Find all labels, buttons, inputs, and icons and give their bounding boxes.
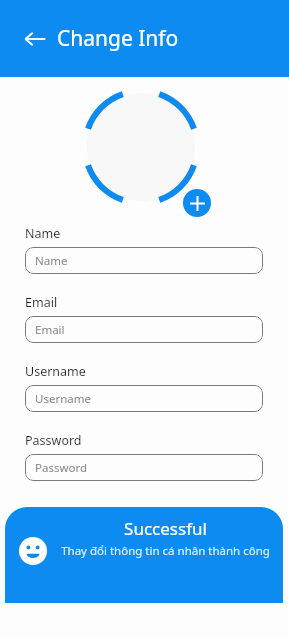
staticText: Username [25,363,86,380]
button[interactable]: Password [25,454,263,481]
button[interactable]: Email [25,316,263,343]
staticText: Name [25,225,61,242]
staticText: Password [25,432,82,449]
button[interactable]: Successful [5,507,283,603]
staticText: Name [35,253,68,269]
staticText: Username [35,391,91,407]
button[interactable]: Add photo [183,189,211,217]
staticText: Successful [124,517,207,540]
button[interactable]: Profile photo [87,93,195,201]
staticText: Thay đổi thông tin cá nhân thành công [61,543,270,559]
button[interactable]: Name [25,247,263,274]
staticText: Change Info [57,24,179,53]
button[interactable]: Username [25,385,263,412]
staticText: Email [35,322,65,338]
button[interactable]: Back [22,26,48,52]
staticText: Email [25,294,58,311]
staticText: Password [35,460,88,476]
